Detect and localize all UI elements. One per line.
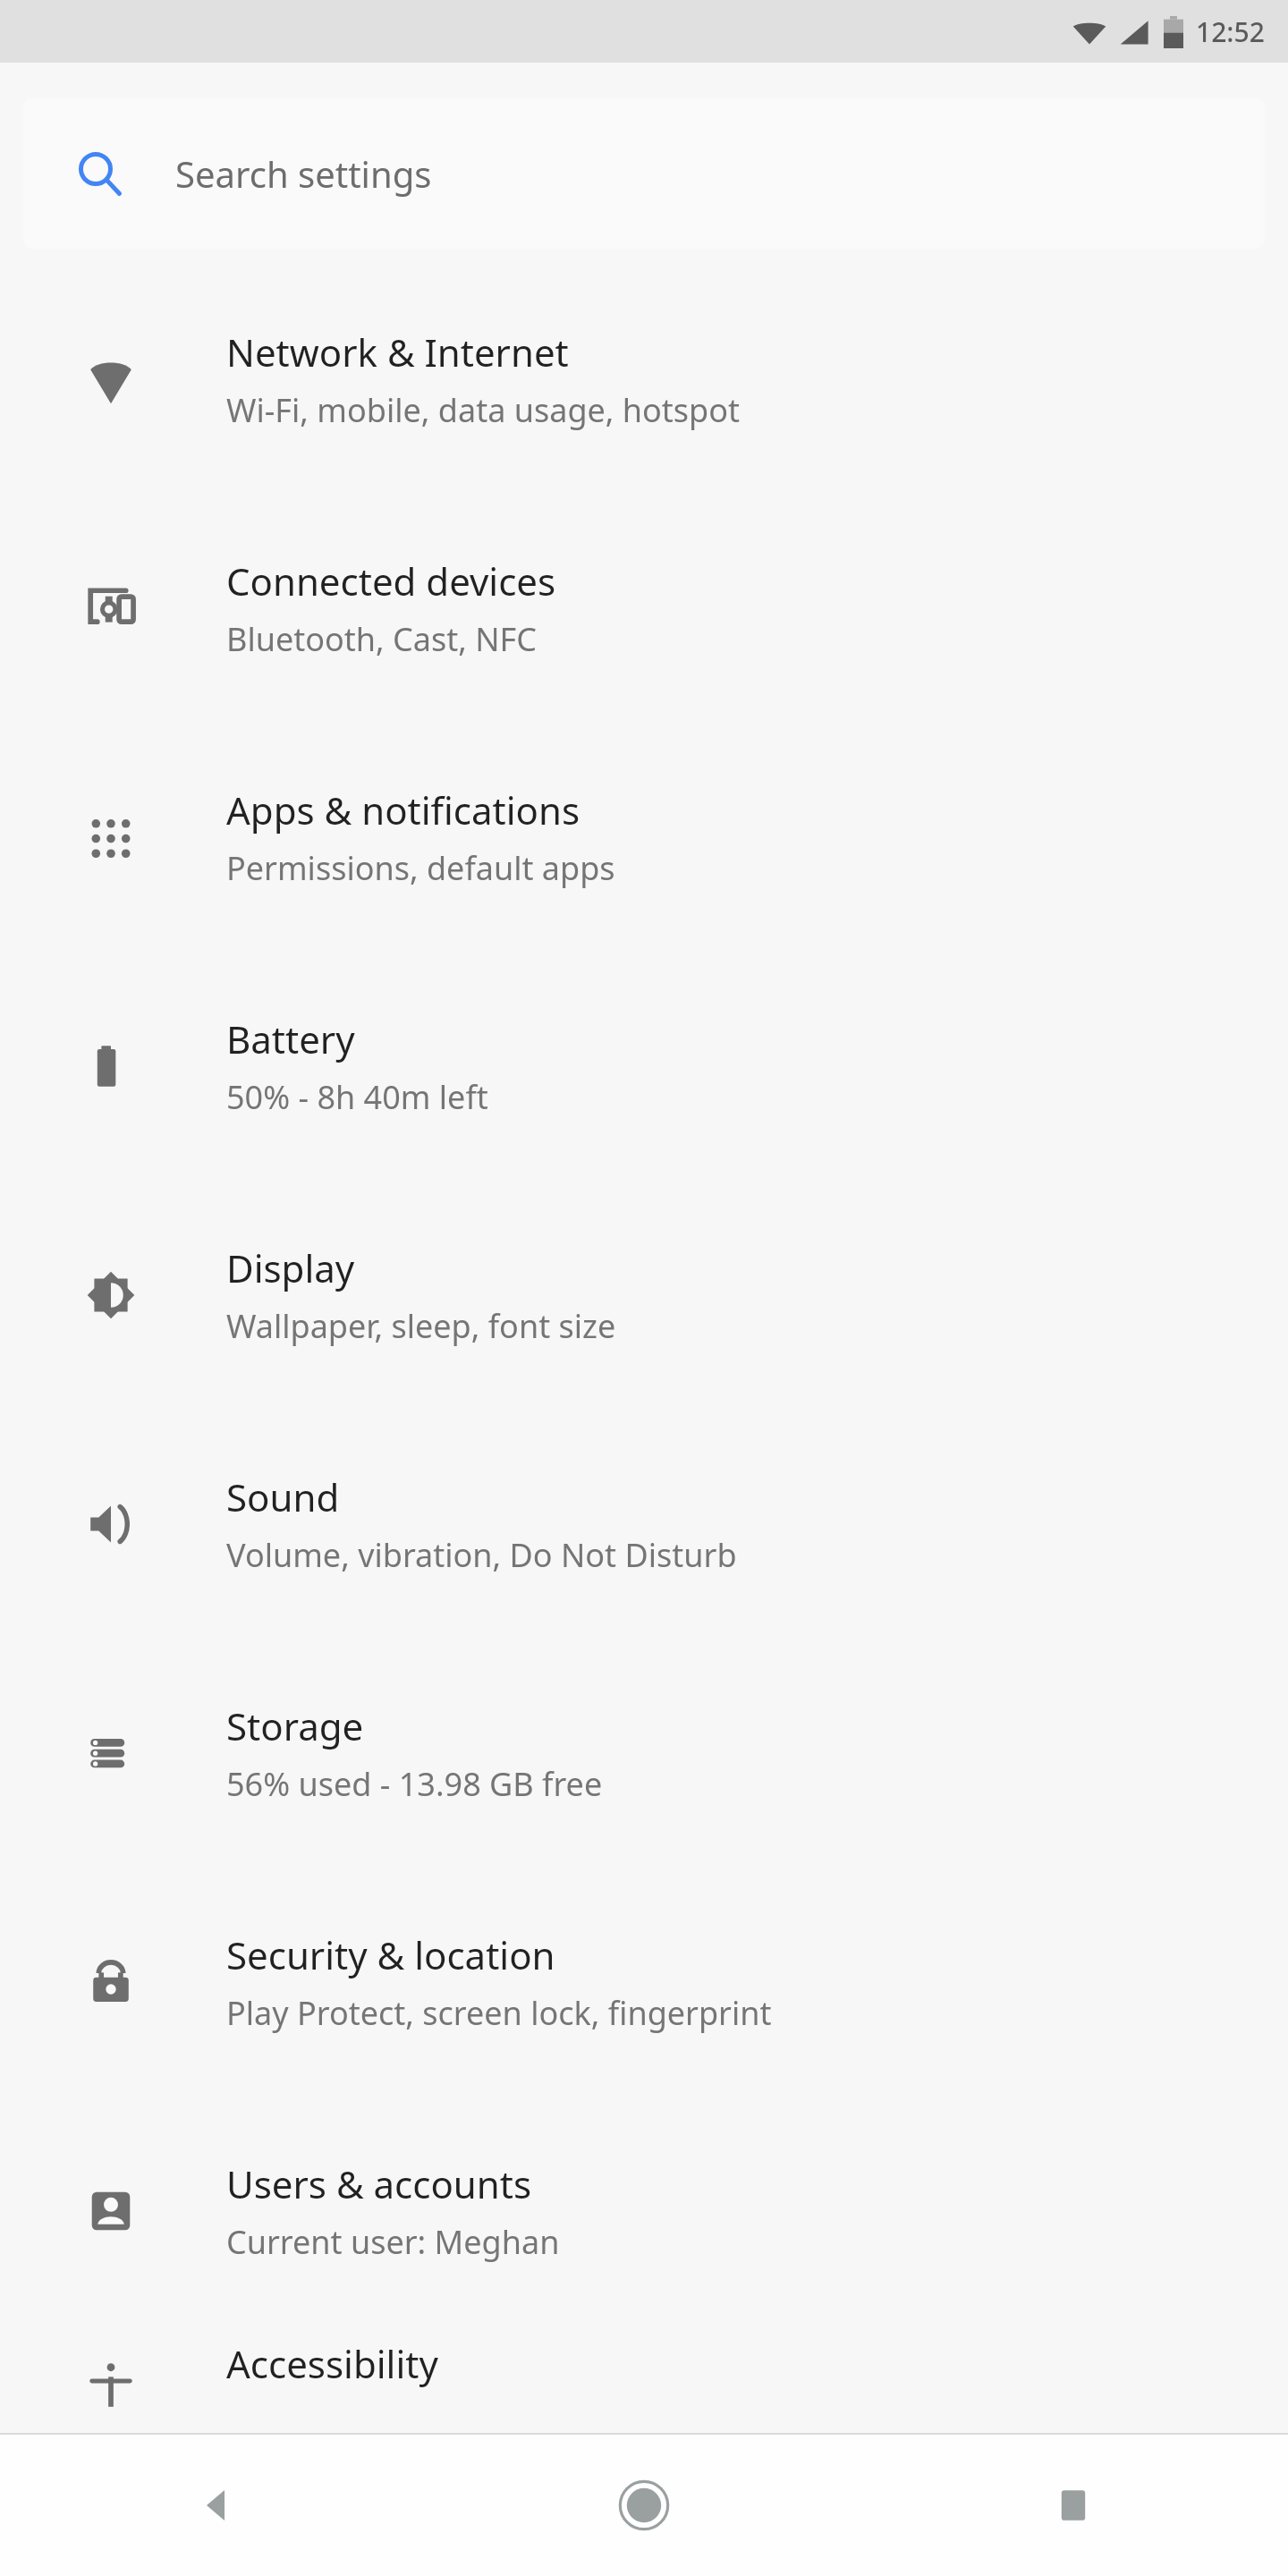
- staticText: Display: [226, 1242, 355, 1293]
- button[interactable]: Accessibility: [0, 2326, 1288, 2433]
- staticText: 50% - 8h 40m left: [226, 1075, 488, 1119]
- button[interactable]: Recent apps: [1011, 2443, 1136, 2568]
- button[interactable]: Network & Internet: [0, 265, 1288, 494]
- staticText: Play Protect, screen lock, fingerprint: [226, 1991, 772, 2035]
- button[interactable]: Display: [0, 1181, 1288, 1410]
- staticText: Bluetooth, Cast, NFC: [226, 617, 538, 661]
- staticText: Volume, vibration, Do Not Disturb: [226, 1533, 737, 1577]
- staticText: Storage: [226, 1700, 364, 1751]
- staticText: Users & accounts: [226, 2158, 532, 2209]
- staticText: Network & Internet: [226, 326, 569, 377]
- staticText: Battery: [226, 1013, 355, 1064]
- staticText: Sound: [226, 1471, 340, 1522]
- staticText: Connected devices: [226, 555, 556, 606]
- staticText: Wallpaper, sleep, font size: [226, 1304, 616, 1348]
- button[interactable]: Battery: [0, 952, 1288, 1181]
- button[interactable]: Storage: [0, 1639, 1288, 1868]
- button[interactable]: Back: [152, 2443, 277, 2568]
- button[interactable]: Sound: [0, 1410, 1288, 1639]
- button[interactable]: Security & location: [0, 1868, 1288, 2097]
- staticText: 56% used - 13.98 GB free: [226, 1762, 603, 1806]
- staticText: Search settings: [175, 149, 432, 198]
- staticText: Current user: Meghan: [226, 2220, 560, 2264]
- staticText: Wi-Fi, mobile, data usage, hotspot: [226, 388, 741, 432]
- button[interactable]: Apps & notifications: [0, 723, 1288, 952]
- staticText: Apps & notifications: [226, 784, 580, 835]
- staticText: Accessibility: [226, 2338, 438, 2389]
- button[interactable]: Home: [581, 2443, 707, 2568]
- staticText: Permissions, default apps: [226, 846, 615, 890]
- button[interactable]: Users & accounts: [0, 2097, 1288, 2326]
- button[interactable]: Search settings: [23, 98, 1265, 249]
- staticText: Security & location: [226, 1929, 555, 1980]
- button[interactable]: Connected devices: [0, 494, 1288, 723]
- staticText: 12:52: [1196, 13, 1265, 50]
